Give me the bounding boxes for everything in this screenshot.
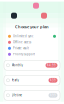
staticText: Unlimited sync [13, 34, 33, 38]
staticText: $39 [50, 78, 56, 82]
button[interactable]: Lifetime [4, 90, 60, 100]
button[interactable]: Yearly [4, 75, 60, 85]
staticText: $99 [50, 93, 56, 97]
staticText: Lifetime [11, 93, 22, 97]
staticText: Choose your plan [15, 24, 49, 29]
staticText: Yearly [11, 78, 18, 82]
staticText: Private vault [13, 46, 29, 50]
staticText: Offline access [13, 40, 31, 44]
staticText: Monthly [11, 63, 22, 67]
staticText: $4.99 [47, 63, 56, 67]
staticText: Priority support [13, 52, 35, 56]
button[interactable]: Monthly [4, 60, 60, 70]
